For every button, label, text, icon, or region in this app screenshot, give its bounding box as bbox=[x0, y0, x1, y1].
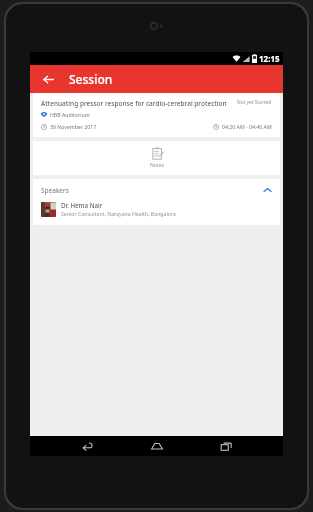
staticText: Dr. Hema Nair bbox=[61, 201, 103, 209]
staticText: 30 November 2017 bbox=[50, 123, 97, 130]
staticText: Attenuating pressor response for cardio-… bbox=[41, 99, 231, 108]
staticText: HBB Auditorium bbox=[50, 111, 90, 118]
staticText: Not yet Started bbox=[237, 99, 272, 106]
staticText: Senior Consultant, Narayana Health, Bang… bbox=[61, 210, 176, 217]
button[interactable]: Back bbox=[38, 69, 58, 89]
staticText: 04:20 AM - 04:40 AM bbox=[222, 123, 272, 130]
other: Collapse bbox=[262, 185, 272, 195]
button[interactable]: Home bbox=[144, 436, 170, 456]
button[interactable]: Speakers bbox=[33, 179, 280, 199]
button[interactable]: Dr. Hema Nair bbox=[33, 199, 280, 225]
button[interactable]: Attenuating pressor response for cardio-… bbox=[33, 93, 280, 137]
staticText: Session bbox=[69, 71, 113, 87]
staticText: Speakers bbox=[41, 186, 69, 195]
button[interactable]: Back bbox=[74, 436, 100, 456]
button[interactable]: Recent apps bbox=[213, 436, 239, 456]
button[interactable]: Notes bbox=[33, 141, 280, 175]
staticText: 12:15 bbox=[259, 53, 280, 64]
staticText: Notes bbox=[150, 162, 164, 169]
